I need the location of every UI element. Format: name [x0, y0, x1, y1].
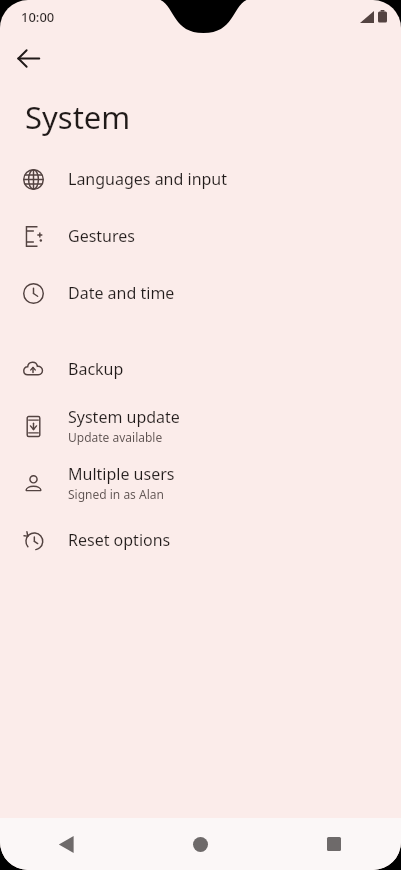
staticText: Reset options [68, 529, 171, 551]
staticText: 10:00 [21, 8, 55, 26]
button[interactable]: Languages and input [0, 150, 401, 207]
button[interactable]: Backup [0, 340, 401, 397]
button[interactable]: Home [133, 818, 267, 870]
staticText: Date and time [68, 282, 175, 304]
staticText: System [25, 96, 131, 138]
staticText: System update [68, 406, 180, 428]
staticText: Signed in as Alan [68, 486, 164, 502]
staticText: Backup [68, 358, 124, 380]
button[interactable]: Multiple users [0, 454, 401, 511]
button[interactable]: Back [7, 37, 49, 79]
button[interactable]: Back [0, 818, 133, 870]
button[interactable]: Date and time [0, 264, 401, 321]
staticText: Gestures [68, 225, 135, 247]
staticText: Multiple users [68, 463, 175, 485]
staticText: Languages and input [68, 168, 228, 190]
button[interactable]: System update [0, 397, 401, 454]
button[interactable]: Reset options [0, 511, 401, 568]
staticText: Update available [68, 429, 163, 445]
button[interactable]: Recents [267, 818, 401, 870]
button[interactable]: Gestures [0, 207, 401, 264]
